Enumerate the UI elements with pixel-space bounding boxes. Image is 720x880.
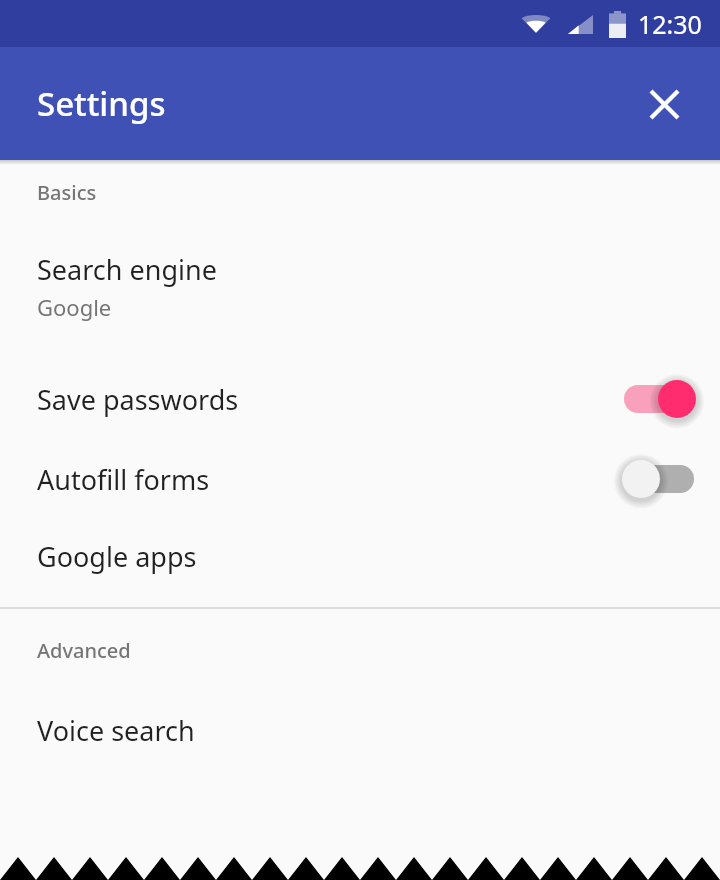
button[interactable]: Search engine (0, 251, 720, 322)
staticText: Save passwords (37, 381, 239, 418)
staticText: Advanced (37, 637, 131, 664)
staticText: 12:30 (638, 7, 702, 41)
button[interactable]: Save passwords (0, 378, 720, 420)
staticText: Google apps (37, 538, 197, 575)
button[interactable]: Voice search (0, 712, 720, 749)
staticText: Basics (37, 179, 97, 206)
staticText: Voice search (37, 712, 195, 749)
button[interactable]: Google apps (0, 538, 720, 575)
staticText: Autofill forms (37, 461, 210, 498)
button[interactable]: Autofill forms (0, 458, 720, 500)
staticText: Settings (37, 81, 166, 126)
staticText: Search engine (37, 251, 217, 288)
button[interactable]: Close (640, 80, 688, 128)
staticText: Google (37, 292, 112, 322)
